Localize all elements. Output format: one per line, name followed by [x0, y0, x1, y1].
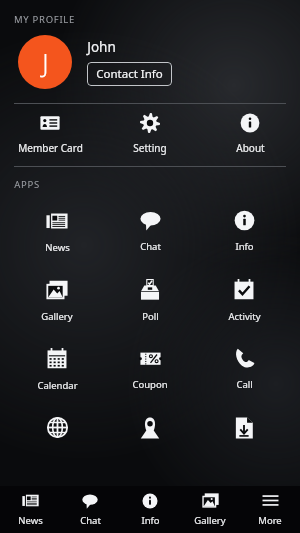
staticText: APPS	[14, 178, 40, 191]
button[interactable]: Setting	[102, 113, 198, 155]
staticText: Info	[141, 514, 160, 527]
staticText: Setting	[133, 141, 167, 155]
staticText: Info	[235, 240, 254, 253]
button[interactable]: Profile avatar J	[18, 35, 72, 89]
staticText: MY PROFILE	[14, 13, 75, 26]
staticText: Coupon	[132, 378, 168, 391]
staticText: Gallery	[194, 514, 226, 527]
button[interactable]: Contact Info	[87, 62, 172, 86]
staticText: Chat	[80, 514, 101, 527]
button[interactable]: News	[0, 486, 60, 533]
staticText: Gallery	[41, 310, 73, 323]
staticText: News	[45, 241, 70, 254]
staticText: Poll	[142, 310, 159, 323]
button[interactable]: Activity	[207, 279, 281, 323]
staticText: Member Card	[18, 141, 83, 155]
button[interactable]: Info	[207, 210, 281, 254]
button[interactable]: Coupon	[113, 348, 187, 392]
staticText: J	[42, 45, 49, 79]
button[interactable]: Map	[113, 417, 187, 461]
staticText: About	[236, 141, 265, 155]
button[interactable]: More	[240, 486, 300, 533]
staticText: John	[87, 38, 116, 56]
button[interactable]: Gallery	[20, 279, 94, 323]
staticText: More	[258, 514, 282, 527]
button[interactable]: Chat	[113, 210, 187, 254]
button[interactable]: Web	[20, 417, 94, 461]
button[interactable]: Download	[207, 417, 281, 461]
button[interactable]: News	[20, 210, 94, 254]
staticText: Contact Info	[96, 66, 163, 82]
staticText: Calendar	[37, 379, 78, 392]
button[interactable]: Member Card	[2, 113, 98, 155]
button[interactable]: Poll	[113, 279, 187, 323]
staticText: News	[18, 514, 43, 527]
button[interactable]: Chat	[60, 486, 120, 533]
staticText: Activity	[228, 310, 261, 323]
button[interactable]: About	[202, 113, 298, 155]
staticText: Call	[236, 378, 253, 391]
staticText: Chat	[140, 240, 161, 253]
button[interactable]: Calendar	[20, 348, 94, 392]
button[interactable]: Info	[120, 486, 180, 533]
button[interactable]: Gallery	[180, 486, 240, 533]
button[interactable]: Call	[207, 348, 281, 392]
